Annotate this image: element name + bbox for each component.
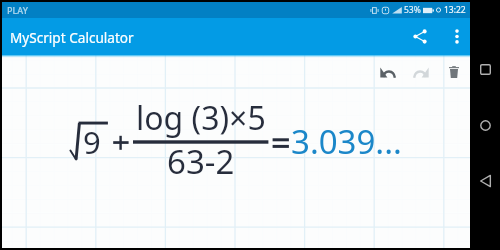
staticText: 53% (404, 4, 421, 16)
button[interactable]: Share (402, 20, 438, 52)
button[interactable]: Undo (368, 56, 408, 88)
staticText: 3.039... (291, 119, 402, 164)
button[interactable]: Redo (401, 56, 441, 88)
button[interactable]: Recents (470, 51, 500, 87)
staticText: 63-2 (167, 139, 235, 184)
staticText: 13:22 (444, 4, 466, 16)
staticText: 9 (83, 121, 101, 163)
button[interactable]: More options (442, 20, 472, 52)
staticText: PLAY (7, 4, 28, 16)
button[interactable]: Home (470, 107, 500, 143)
staticText: log (3)×5 (136, 96, 266, 140)
button[interactable]: Clear (437, 56, 471, 88)
button[interactable]: Back (470, 163, 500, 199)
staticText: MyScript Calculator (10, 28, 134, 47)
